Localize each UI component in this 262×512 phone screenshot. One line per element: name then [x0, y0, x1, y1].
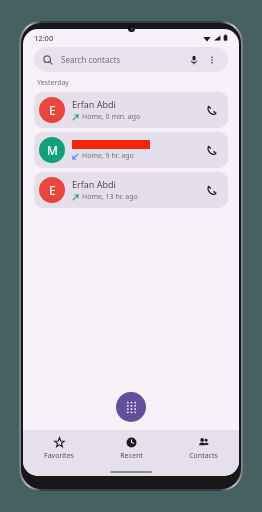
staticText: Favorites — [44, 451, 74, 461]
button[interactable]: Favorites — [23, 430, 95, 467]
button[interactable]: Call — [200, 179, 222, 201]
button[interactable]: More options — [205, 53, 219, 67]
staticText: M — [47, 142, 58, 158]
staticText: Home, 13 hr. ago — [82, 192, 138, 202]
staticText: Yesterday — [37, 78, 69, 88]
button[interactable]: Call — [200, 99, 222, 121]
staticText: Home, 9 hr. ago — [82, 151, 134, 161]
staticText: E — [49, 102, 56, 118]
button[interactable]: E — [34, 172, 228, 208]
staticText: Search contacts — [61, 54, 120, 65]
button[interactable]: Call — [200, 139, 222, 161]
staticText: Erfan Abdi — [72, 178, 116, 190]
staticText: 12:00 — [34, 33, 54, 43]
staticText: Home, 0 min. ago — [82, 112, 141, 122]
staticText: Recent — [120, 451, 143, 461]
button[interactable]: E — [34, 92, 228, 128]
staticText: E — [49, 182, 56, 198]
button[interactable]: Recent — [95, 430, 167, 467]
button[interactable]: Dialpad — [116, 392, 146, 422]
staticText: Erfan Abdi — [72, 98, 116, 110]
button[interactable]: Search contacts — [34, 47, 228, 72]
button[interactable]: Voice search — [187, 53, 201, 67]
button[interactable]: M — [34, 132, 228, 168]
button[interactable]: Contacts — [167, 430, 239, 467]
staticText: Contacts — [189, 451, 218, 461]
